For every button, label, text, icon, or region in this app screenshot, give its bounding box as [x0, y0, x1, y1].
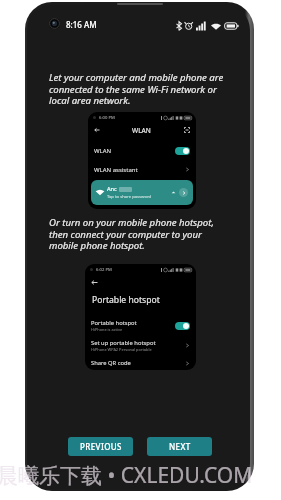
staticText: Share QR code	[91, 359, 131, 367]
button[interactable]: WLAN assistant	[94, 160, 190, 179]
staticText: WLAN	[132, 126, 151, 135]
other: Scan QR	[184, 127, 190, 133]
staticText: HiPhone is active	[91, 327, 123, 332]
staticText: HiPhone WPA2 Personal portable	[91, 347, 152, 352]
other: Toggle	[175, 322, 190, 330]
button[interactable]: Anc	[91, 180, 193, 205]
button[interactable]: PREVIOUS	[68, 437, 133, 456]
other: Details	[179, 188, 188, 197]
staticText: Anc	[107, 185, 117, 193]
button[interactable]: Portable hotspot	[91, 316, 190, 335]
staticText: Or turn on your mobile phone hotspot, th…	[49, 216, 225, 251]
staticText: WLAN assistant	[94, 166, 138, 174]
button[interactable]: NEXT	[147, 437, 212, 456]
staticText: Tap to share password	[107, 194, 152, 200]
staticText: Set up portable hotspot	[91, 339, 156, 347]
staticText: Portable hotspot	[91, 319, 137, 327]
button[interactable]: Share QR code	[91, 356, 190, 370]
other: Toggle	[175, 147, 190, 155]
button[interactable]: Set up portable hotspot	[91, 335, 190, 356]
other: Back	[94, 127, 100, 133]
staticText: 6:02 PM	[96, 267, 112, 273]
staticText: WLAN	[94, 147, 112, 155]
staticText: PREVIOUS	[80, 441, 122, 452]
staticText: Let your computer and mobile phone are c…	[49, 71, 229, 106]
button[interactable]: WLAN	[94, 141, 190, 160]
staticText: 晨曦乐下载 • CXLEDU.COM	[0, 461, 253, 490]
staticText: NEXT	[169, 441, 191, 452]
staticText: Portable hotspot	[92, 294, 160, 306]
staticText: 6:00 PM	[99, 115, 115, 121]
other: Back	[91, 279, 98, 286]
staticText: 8:16 AM	[66, 19, 97, 30]
